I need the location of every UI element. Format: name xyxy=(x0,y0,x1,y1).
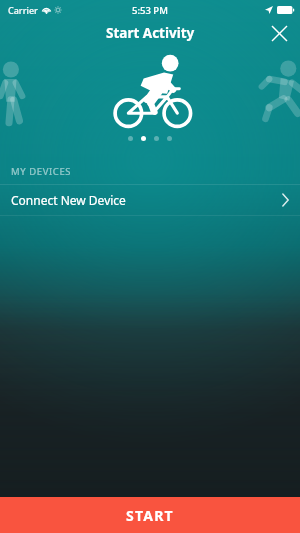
button[interactable]: Cycling activity xyxy=(104,50,196,130)
staticText: Connect New Device xyxy=(11,192,126,208)
staticText: START xyxy=(126,506,174,525)
button[interactable]: Connect New Device xyxy=(0,185,300,215)
button[interactable]: Close xyxy=(266,20,292,46)
button[interactable]: START xyxy=(0,497,300,533)
staticText: MY DEVICES xyxy=(11,165,72,178)
staticText: Start Activity xyxy=(106,24,195,42)
staticText: Carrier xyxy=(8,4,38,16)
staticText: 5:53 PM xyxy=(132,4,168,17)
